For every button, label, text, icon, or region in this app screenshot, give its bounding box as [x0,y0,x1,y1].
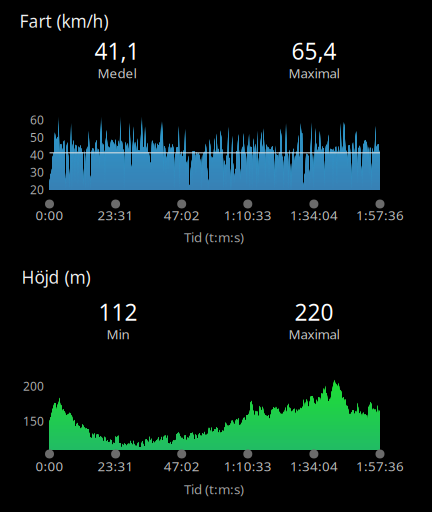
staticText: 47:02 [164,206,200,224]
staticText: 1:57:36 [356,457,404,475]
staticText: 220 [294,297,333,327]
staticText: 40 [30,147,44,163]
button[interactable]: 112 [0,0,432,512]
staticText: 50 [30,129,44,145]
staticText: Medel [97,64,136,82]
staticText: 47:02 [164,457,200,475]
staticText: 150 [23,413,44,429]
staticText: 1:10:33 [224,457,272,475]
staticText: Maximal [288,325,339,343]
staticText: Tid (t:m:s) [184,228,244,246]
staticText: 23:31 [98,206,134,224]
button[interactable]: 41,1 [0,0,432,512]
staticText: 1:57:36 [356,206,404,224]
staticText: 65,4 [291,36,336,66]
staticText: 20 [30,182,44,197]
staticText: 0:00 [35,457,63,475]
staticText: 23:31 [98,457,134,475]
staticText: 1:10:33 [224,206,272,224]
staticText: 60 [30,112,44,128]
button[interactable]: 220 [0,0,432,512]
staticText: Fart (km/h) [19,9,108,32]
staticText: 200 [23,378,44,394]
staticText: 1:34:04 [290,457,338,475]
staticText: 41,1 [94,36,139,66]
staticText: 30 [30,164,44,180]
staticText: Höjd (m) [21,265,90,288]
staticText: Tid (t:m:s) [184,480,244,498]
staticText: 1:34:04 [290,206,338,224]
staticText: Maximal [288,64,339,82]
staticText: Min [106,325,129,343]
staticText: 0:00 [35,206,63,224]
staticText: 112 [98,297,137,327]
button[interactable]: 65,4 [0,0,432,512]
